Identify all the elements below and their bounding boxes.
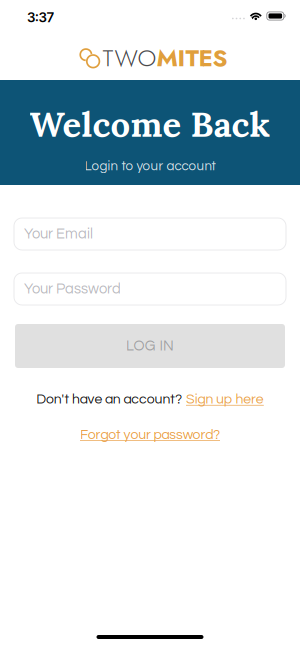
button[interactable]: Forgot your password? [80, 427, 220, 442]
staticText: 3:37 [27, 9, 54, 25]
staticText: Forgot your password? [80, 427, 220, 442]
staticText: MITES [156, 41, 227, 75]
staticText: Welcome Back [29, 102, 270, 146]
staticText: TWO [102, 41, 156, 75]
button[interactable]: LOG IN [15, 324, 285, 368]
staticText: Don't have an account? [36, 392, 182, 406]
staticText: Your Password [24, 281, 121, 296]
button[interactable]: Sign up here [186, 392, 264, 406]
staticText: Your Email [24, 226, 93, 241]
staticText: Sign up here [186, 392, 264, 406]
button[interactable]: Your Password [14, 273, 286, 305]
staticText: LOG IN [126, 338, 174, 353]
button[interactable]: Your Email [14, 218, 286, 250]
staticText: Login to your account [84, 159, 215, 173]
